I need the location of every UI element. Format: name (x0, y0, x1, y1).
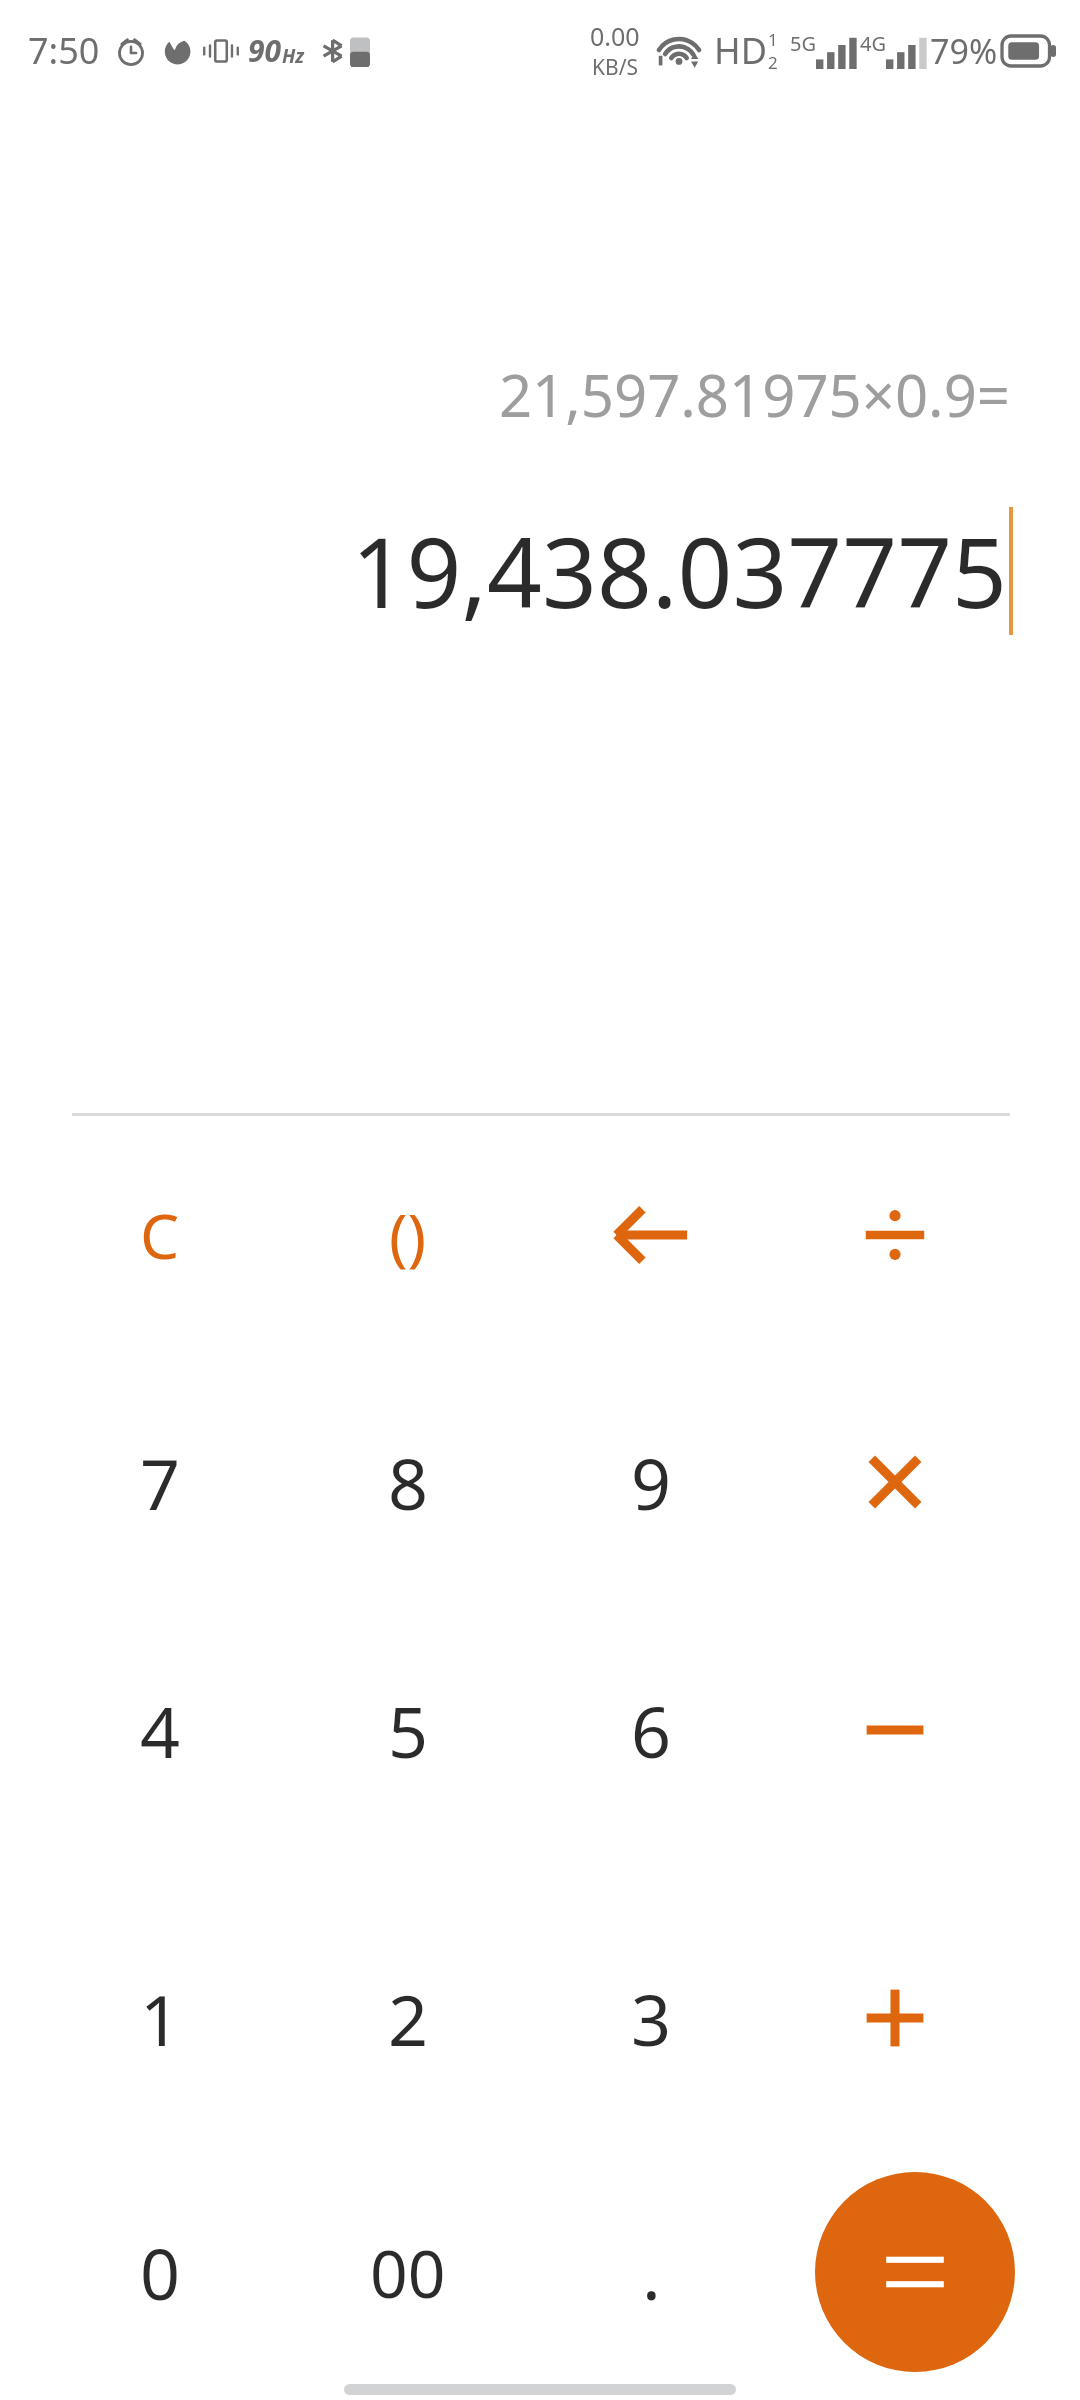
button[interactable]: Plus (790, 1918, 1000, 2118)
staticText: . (642, 2225, 661, 2320)
staticText: 8 (388, 1435, 429, 1530)
button[interactable]: 00 (303, 2172, 513, 2372)
button[interactable]: 8 (303, 1382, 513, 1582)
staticText: HD (714, 26, 767, 75)
button[interactable]: 3 (546, 1918, 756, 2118)
staticText: 79% (930, 28, 998, 74)
button[interactable]: 1 (55, 1918, 265, 2118)
staticText: 9 (631, 1435, 672, 1530)
staticText: 90 (248, 30, 282, 71)
staticText: 1 (140, 1971, 181, 2066)
button[interactable]: 0 (55, 2172, 265, 2372)
button[interactable]: Backspace (546, 1135, 756, 1335)
button[interactable]: . (546, 2172, 756, 2372)
staticText: () (389, 1193, 427, 1277)
staticText: 2 (768, 51, 778, 74)
staticText: 21,597.81975×0.9= (498, 355, 1010, 434)
staticText: Hz (282, 43, 305, 69)
staticText: 7:50 (28, 26, 100, 75)
staticText: KB/S (592, 53, 638, 82)
staticText: 0.00 (590, 19, 640, 53)
staticText: 3 (631, 1971, 672, 2066)
staticText: 00 (370, 2227, 446, 2317)
staticText: 6 (631, 1683, 672, 1778)
staticText: C (140, 1193, 180, 1277)
button[interactable]: 2 (303, 1918, 513, 2118)
staticText: 5 (388, 1683, 429, 1778)
staticText: 19,438.037775 (351, 505, 1007, 636)
button[interactable]: Minus (790, 1630, 1000, 1830)
button[interactable]: () (303, 1135, 513, 1335)
button[interactable]: Divide (790, 1135, 1000, 1335)
staticText: 7 (140, 1435, 181, 1530)
button[interactable]: Multiply (790, 1382, 1000, 1582)
staticText: 5G (790, 30, 816, 57)
button[interactable]: Equals (815, 2172, 1015, 2372)
button[interactable]: 6 (546, 1630, 756, 1830)
button[interactable]: 5 (303, 1630, 513, 1830)
staticText: 4G (860, 30, 886, 57)
button[interactable]: 7 (55, 1382, 265, 1582)
staticText: 0 (140, 2225, 181, 2320)
button[interactable]: C (55, 1135, 265, 1335)
staticText: 4 (140, 1683, 181, 1778)
staticText: 1 (768, 28, 778, 51)
button[interactable]: 4 (55, 1630, 265, 1830)
button[interactable]: 9 (546, 1382, 756, 1582)
staticText: 2 (388, 1971, 429, 2066)
